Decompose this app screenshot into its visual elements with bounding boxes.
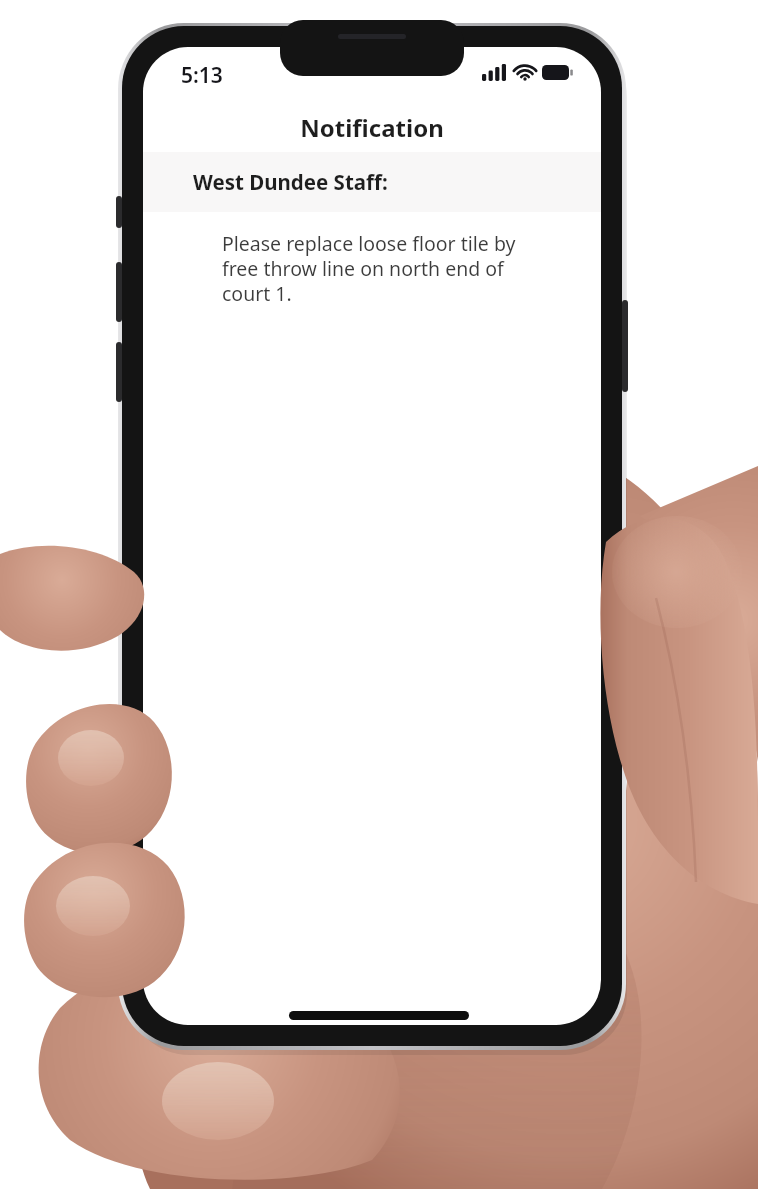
staticText: Please replace loose floor tile by free … [222,230,530,306]
staticText: 5:13 [181,61,223,90]
staticText: Notification [300,111,444,144]
button[interactable]: West Dundee Staff: [145,152,598,212]
staticText: West Dundee Staff: [193,168,388,196]
button[interactable]: Notification [145,109,598,145]
button[interactable]: Please replace loose floor tile by free … [222,230,530,306]
button[interactable]: Home [289,1000,469,1032]
